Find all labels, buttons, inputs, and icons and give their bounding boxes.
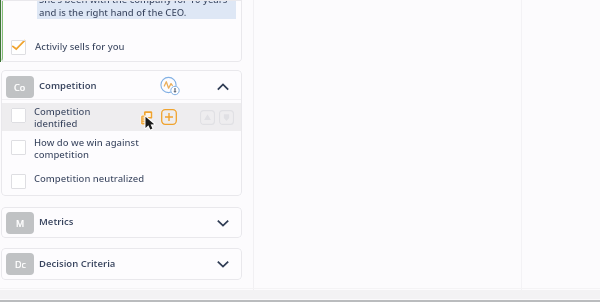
- staticText: Decision Criteria: [39, 257, 116, 270]
- button[interactable]: Copy: [141, 111, 153, 123]
- button[interactable]: Expand: [215, 257, 231, 271]
- staticText: M: [16, 217, 25, 229]
- button[interactable]: Activily sells for you: [1, 37, 242, 57]
- button[interactable]: Expand: [215, 216, 231, 230]
- button[interactable]: Attach: [200, 110, 215, 125]
- button[interactable]: How do we win against competition: [1, 131, 242, 166]
- button[interactable]: Flag: [219, 110, 234, 125]
- staticText: Competition: [39, 79, 97, 92]
- staticText: Competition identified: [34, 105, 104, 130]
- button[interactable]: Activity: [160, 77, 182, 97]
- staticText: Co: [14, 81, 26, 93]
- button[interactable]: M: [1, 207, 242, 238]
- button[interactable]: Co: [1, 70, 242, 99]
- button[interactable]: Add: [161, 109, 177, 125]
- button[interactable]: Collapse: [215, 80, 231, 94]
- staticText: Competition neutralized: [34, 172, 145, 185]
- staticText: How do we win against competition: [34, 136, 144, 161]
- staticText: Metrics: [39, 215, 74, 228]
- staticText: Activily sells for you: [35, 40, 125, 53]
- button[interactable]: Competition neutralized: [1, 166, 242, 196]
- button[interactable]: Competition identified: [1, 103, 242, 131]
- staticText: She's been with the company for 10 years: [39, 0, 228, 6]
- staticText: Dc: [15, 258, 26, 270]
- button[interactable]: Dc: [1, 248, 242, 280]
- staticText: and is the right hand of the CEO.: [39, 6, 187, 19]
